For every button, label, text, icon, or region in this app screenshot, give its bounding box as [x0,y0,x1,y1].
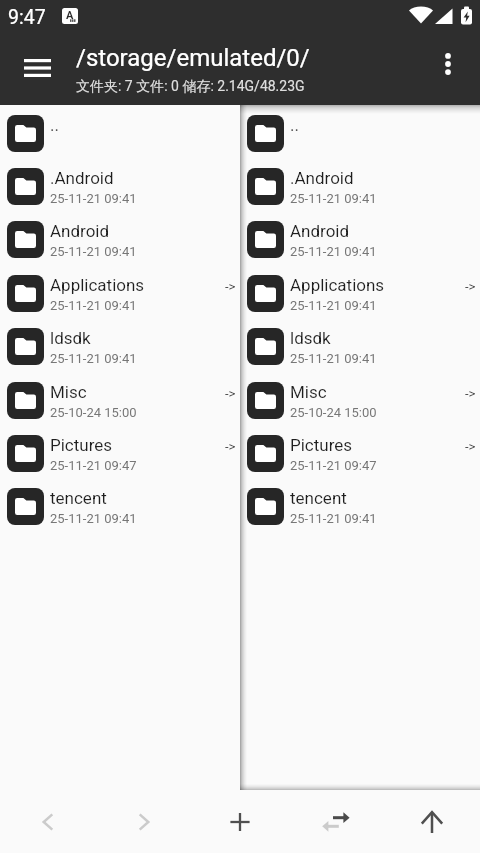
staticText: -> [465,386,476,401]
button[interactable]: .Android [240,163,480,216]
staticText: Applications [290,275,385,295]
staticText: -> [225,279,236,294]
staticText: 文件夹: 7 文件: 0 储存: 2.14G/48.23G [76,78,305,96]
staticText: ldsdk [50,328,91,348]
staticText: .. [290,115,299,135]
staticText: -> [225,439,236,454]
staticText: ldsdk [290,328,331,348]
button[interactable]: Misc [0,377,240,430]
button[interactable]: Swap panes [288,790,384,853]
button[interactable]: Misc [240,377,480,430]
button[interactable]: ldsdk [0,323,240,376]
button[interactable]: Menu [13,44,61,92]
staticText: 25-11-21 09:41 [290,511,377,526]
button[interactable]: Up [384,790,480,853]
staticText: -> [465,439,476,454]
staticText: /storage/emulated/0/ [76,44,310,72]
button[interactable]: ldsdk [240,323,480,376]
staticText: 25-11-21 09:41 [290,298,377,313]
staticText: Pictures [50,435,113,455]
staticText: 25-11-21 09:47 [50,458,137,473]
staticText: .Android [290,168,354,188]
staticText: A [66,9,74,22]
staticText: 25-11-21 09:41 [290,244,377,259]
button[interactable]: tencent [240,483,480,536]
staticText: Applications [50,275,145,295]
staticText: .Android [50,168,114,188]
staticText: 25-11-21 09:41 [50,298,137,313]
staticText: Android [290,221,350,241]
button[interactable]: Pictures [240,430,480,483]
staticText: 25-10-24 15:00 [290,405,377,420]
button[interactable]: .. [0,110,240,163]
staticText: Pictures [290,435,353,455]
staticText: 25-11-21 09:41 [50,511,137,526]
button[interactable]: Android [0,216,240,269]
button[interactable]: Back [0,790,96,853]
staticText: tencent [50,488,107,508]
button[interactable]: Applications [0,270,240,323]
staticText: Misc [50,382,87,402]
staticText: 25-11-21 09:41 [50,191,137,206]
staticText: Misc [290,382,327,402]
staticText: 25-11-21 09:41 [290,351,377,366]
button[interactable]: Pictures [0,430,240,483]
staticText: 9:47 [8,6,46,29]
button[interactable]: More options [428,44,468,84]
staticText: 25-10-24 15:00 [50,405,137,420]
staticText: 25-11-21 09:41 [290,191,377,206]
staticText: .. [50,115,59,135]
staticText: -> [465,279,476,294]
staticText: 25-11-21 09:41 [50,351,137,366]
button[interactable]: New folder [192,790,288,853]
button[interactable]: Forward [96,790,192,853]
staticText: 25-11-21 09:41 [50,244,137,259]
button[interactable]: .Android [0,163,240,216]
staticText: tencent [290,488,347,508]
button[interactable]: Android [240,216,480,269]
staticText: -> [225,386,236,401]
button[interactable]: .. [240,110,480,163]
staticText: 25-11-21 09:47 [290,458,377,473]
staticText: Android [50,221,110,241]
button[interactable]: tencent [0,483,240,536]
button[interactable]: Applications [240,270,480,323]
